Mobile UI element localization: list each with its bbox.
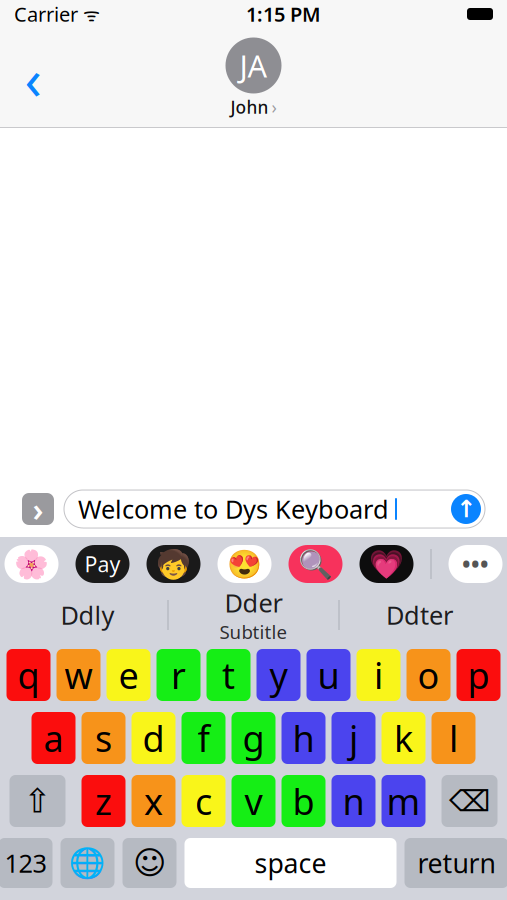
button[interactable]: k bbox=[381, 712, 425, 764]
staticText: John bbox=[230, 95, 268, 118]
staticText: a bbox=[43, 714, 63, 762]
staticText: u bbox=[317, 651, 339, 699]
staticText: 😍 bbox=[227, 548, 262, 580]
button[interactable]: Delete bbox=[441, 775, 497, 827]
button[interactable]: return bbox=[404, 838, 507, 888]
button[interactable]: y bbox=[256, 649, 300, 701]
button[interactable]: m bbox=[381, 775, 425, 827]
staticText: g bbox=[242, 714, 264, 762]
staticText: › bbox=[271, 95, 276, 118]
staticText: 1:15 PM bbox=[246, 1, 321, 27]
staticText: 🌐 bbox=[69, 846, 106, 880]
button[interactable]: g bbox=[231, 712, 275, 764]
button[interactable]: x bbox=[131, 775, 175, 827]
staticText: Pay bbox=[84, 550, 120, 578]
button[interactable]: l bbox=[431, 712, 475, 764]
button[interactable]: e bbox=[106, 649, 150, 701]
staticText: f bbox=[197, 714, 209, 762]
staticText: n bbox=[342, 777, 364, 825]
button[interactable]: r bbox=[156, 649, 200, 701]
staticText: b bbox=[292, 777, 314, 825]
button[interactable]: s bbox=[81, 712, 125, 764]
staticText: c bbox=[195, 777, 212, 825]
button[interactable]: Next keyboard bbox=[60, 838, 114, 888]
button[interactable]: Dder bbox=[168, 593, 338, 637]
staticText: w bbox=[64, 651, 92, 699]
button[interactable]: More apps bbox=[22, 493, 54, 525]
staticText: Ddter bbox=[386, 598, 453, 632]
staticText: Subtitle bbox=[219, 619, 287, 644]
staticText: 🌸 bbox=[14, 548, 49, 580]
button[interactable]: f bbox=[181, 712, 225, 764]
staticText: › bbox=[32, 488, 43, 530]
button[interactable]: More apps bbox=[448, 545, 502, 583]
button[interactable]: c bbox=[181, 775, 225, 827]
staticText: ••• bbox=[462, 549, 489, 579]
staticText: Carrier bbox=[14, 1, 78, 27]
staticText: r bbox=[171, 651, 186, 699]
staticText: q bbox=[17, 651, 39, 699]
staticText: t bbox=[222, 651, 235, 699]
staticText: 🔍 bbox=[298, 548, 333, 580]
button[interactable]: q bbox=[6, 649, 50, 701]
staticText: d bbox=[142, 714, 164, 762]
button[interactable]: n bbox=[331, 775, 375, 827]
staticText: y bbox=[269, 651, 287, 699]
staticText: JA bbox=[239, 45, 267, 86]
staticText: l bbox=[449, 714, 458, 762]
staticText: o bbox=[417, 651, 439, 699]
staticText: h bbox=[292, 714, 314, 762]
button[interactable]: p bbox=[456, 649, 500, 701]
button[interactable]: h bbox=[281, 712, 325, 764]
staticText: ᯤ bbox=[78, 2, 100, 26]
button[interactable]: a bbox=[31, 712, 75, 764]
button[interactable]: o bbox=[406, 649, 450, 701]
button[interactable]: Apple Pay bbox=[75, 545, 129, 583]
button[interactable]: j bbox=[331, 712, 375, 764]
staticText: 🧒 bbox=[156, 548, 191, 580]
staticText: e bbox=[118, 651, 138, 699]
button[interactable]: u bbox=[306, 649, 350, 701]
staticText: space bbox=[254, 845, 326, 881]
button[interactable]: Ddly bbox=[7, 593, 167, 637]
button[interactable]: Images bbox=[288, 545, 342, 583]
button[interactable]: 123 bbox=[0, 838, 52, 888]
staticText: ⇧ bbox=[23, 782, 51, 820]
button[interactable]: Ddter bbox=[339, 593, 499, 637]
staticText: v bbox=[244, 777, 262, 825]
button[interactable]: Shift bbox=[9, 775, 65, 827]
button[interactable]: Back bbox=[10, 55, 56, 101]
staticText: Welcome to Dys Keyboard bbox=[78, 492, 389, 526]
staticText: ⌫ bbox=[449, 784, 490, 818]
button[interactable]: Emoji bbox=[122, 838, 176, 888]
staticText: k bbox=[394, 714, 413, 762]
staticText: ↑ bbox=[456, 495, 476, 523]
staticText: ☺ bbox=[133, 845, 166, 881]
staticText: x bbox=[144, 777, 163, 825]
staticText: ‹ bbox=[24, 41, 41, 115]
staticText: m bbox=[386, 777, 420, 825]
button[interactable]: b bbox=[281, 775, 325, 827]
staticText: 💗 bbox=[369, 548, 404, 580]
staticText: s bbox=[95, 714, 112, 762]
staticText: Ddly bbox=[60, 598, 114, 632]
staticText: return bbox=[417, 845, 495, 881]
button[interactable]: space bbox=[184, 838, 396, 888]
button[interactable]: Photos bbox=[4, 545, 58, 583]
button[interactable]: Music bbox=[359, 545, 413, 583]
button[interactable]: Memoji Stickers bbox=[217, 545, 271, 583]
staticText: j bbox=[349, 714, 358, 762]
button[interactable]: JA bbox=[225, 37, 281, 118]
button[interactable]: i bbox=[356, 649, 400, 701]
staticText: 123 bbox=[4, 846, 46, 880]
button[interactable]: Send bbox=[451, 494, 481, 524]
button[interactable]: d bbox=[131, 712, 175, 764]
button[interactable]: z bbox=[81, 775, 125, 827]
button[interactable]: v bbox=[231, 775, 275, 827]
staticText: p bbox=[467, 651, 489, 699]
button[interactable]: t bbox=[206, 649, 250, 701]
button[interactable]: Memoji bbox=[146, 545, 200, 583]
button[interactable]: w bbox=[56, 649, 100, 701]
staticText: i bbox=[374, 651, 383, 699]
staticText: Dder bbox=[224, 586, 282, 619]
